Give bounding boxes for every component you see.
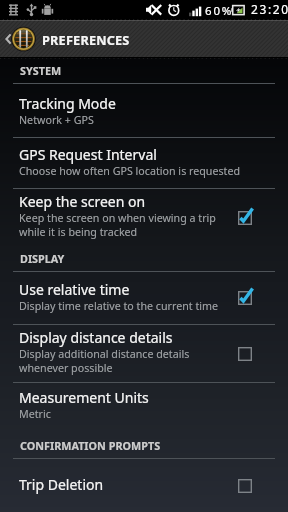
staticText: Use relative time — [19, 280, 130, 299]
staticText: Display distance details — [19, 328, 173, 347]
staticText: PREFERENCES — [42, 31, 130, 48]
staticText: SYSTEM — [20, 63, 62, 78]
button[interactable]: Keep the screen on — [0, 189, 288, 247]
staticText: CONFIRMATION PROMPTS — [20, 438, 161, 453]
staticText: 60% — [205, 3, 234, 19]
staticText: Metric — [19, 407, 51, 422]
button[interactable]: Navigate up — [0, 20, 288, 58]
button[interactable]: Measurement Units — [0, 383, 288, 435]
button[interactable]: GPS Request Interval — [0, 138, 288, 188]
staticText: GPS Request Interval — [19, 145, 157, 164]
staticText: 23:20 — [251, 1, 288, 17]
staticText: DISPLAY — [20, 251, 65, 266]
button[interactable]: Tracking Mode — [0, 84, 288, 137]
staticText: Network + GPS — [19, 113, 94, 128]
staticText: Display additional distance details when… — [19, 347, 190, 375]
staticText: Keep the screen on — [19, 192, 146, 211]
staticText: Measurement Units — [19, 388, 149, 407]
staticText: Tracking Mode — [19, 94, 116, 113]
staticText: Trip Deletion — [19, 475, 104, 494]
button[interactable]: Display distance details — [0, 325, 288, 382]
button[interactable]: Trip Deletion — [0, 459, 288, 512]
staticText: Choose how often GPS location is request… — [19, 164, 241, 179]
staticText: Keep the screen on when viewing a trip w… — [19, 211, 216, 239]
staticText: Display time relative to the current tim… — [19, 299, 219, 314]
button[interactable]: Use relative time — [0, 272, 288, 324]
